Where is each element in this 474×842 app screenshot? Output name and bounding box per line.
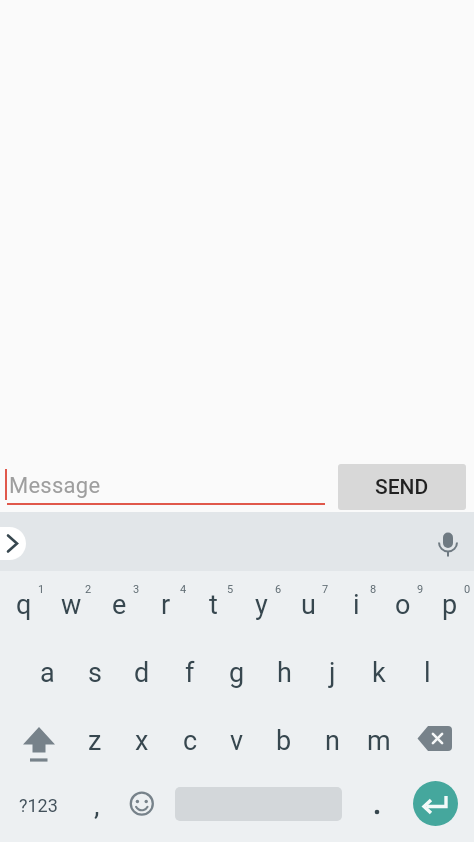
button[interactable] <box>166 639 213 707</box>
staticText: n <box>325 725 340 757</box>
button[interactable] <box>352 775 402 842</box>
button[interactable] <box>119 707 166 775</box>
staticText: ?123 <box>19 795 58 816</box>
staticText: 0 <box>464 583 471 596</box>
staticText: l <box>424 657 431 689</box>
button[interactable] <box>71 639 118 707</box>
button[interactable] <box>261 707 308 775</box>
button[interactable] <box>213 707 260 775</box>
button[interactable] <box>413 781 458 826</box>
button[interactable] <box>261 639 308 707</box>
button[interactable] <box>142 571 189 639</box>
button[interactable] <box>0 571 47 639</box>
button[interactable] <box>213 639 260 707</box>
staticText: a <box>40 657 55 689</box>
button[interactable] <box>403 707 474 775</box>
staticText: m <box>367 725 391 757</box>
staticText: c <box>183 725 198 757</box>
button[interactable] <box>166 707 213 775</box>
staticText: x <box>135 725 149 757</box>
staticText: SEND <box>375 475 429 500</box>
button[interactable] <box>308 639 355 707</box>
staticText: 9 <box>417 583 424 596</box>
staticText: g <box>229 657 245 689</box>
button[interactable] <box>332 571 379 639</box>
staticText: s <box>88 657 102 689</box>
staticText: 8 <box>370 583 377 596</box>
staticText: y <box>255 589 268 621</box>
staticText: Message <box>9 473 101 499</box>
staticText: b <box>276 725 292 757</box>
staticText: z <box>88 725 102 757</box>
button[interactable] <box>237 571 284 639</box>
staticText: k <box>372 657 386 689</box>
staticText: w <box>61 589 82 621</box>
staticText: r <box>161 589 171 621</box>
button[interactable] <box>379 571 426 639</box>
button[interactable] <box>284 571 331 639</box>
button[interactable] <box>47 571 94 639</box>
staticText: d <box>134 657 150 689</box>
button[interactable] <box>356 639 403 707</box>
button[interactable] <box>427 571 474 639</box>
staticText: 3 <box>133 583 140 596</box>
button[interactable] <box>0 707 71 775</box>
staticText: q <box>16 589 32 621</box>
staticText: i <box>353 589 360 621</box>
staticText: h <box>277 657 292 689</box>
staticText: p <box>442 589 458 621</box>
button[interactable] <box>356 707 403 775</box>
button[interactable] <box>308 707 355 775</box>
button[interactable] <box>123 775 165 842</box>
button[interactable]: SEND <box>338 464 466 510</box>
staticText: , <box>94 789 100 822</box>
staticText: 2 <box>85 583 92 596</box>
staticText: 1 <box>38 583 45 596</box>
staticText: f <box>185 657 195 689</box>
staticText: 5 <box>227 583 234 596</box>
button[interactable] <box>119 639 166 707</box>
staticText: o <box>395 589 411 621</box>
button[interactable] <box>436 531 460 559</box>
staticText: v <box>230 725 244 757</box>
staticText: 6 <box>275 583 282 596</box>
button[interactable] <box>24 639 71 707</box>
staticText: t <box>209 589 218 621</box>
staticText: 7 <box>322 583 329 596</box>
button[interactable] <box>0 775 71 842</box>
staticText: 4 <box>180 583 187 596</box>
button[interactable] <box>71 707 118 775</box>
button[interactable] <box>403 639 450 707</box>
button[interactable] <box>95 571 142 639</box>
button[interactable] <box>0 527 26 560</box>
button[interactable] <box>71 775 123 842</box>
staticText: j <box>329 657 336 689</box>
staticText: u <box>301 589 316 621</box>
button[interactable] <box>190 571 237 639</box>
staticText: e <box>112 589 127 621</box>
